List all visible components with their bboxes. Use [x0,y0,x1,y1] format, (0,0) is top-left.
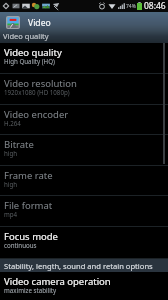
staticText: Focus mode [4,230,58,243]
button[interactable]: Video camera operation [0,272,168,300]
staticText: high [4,149,18,157]
staticText: 74% [126,3,136,10]
button[interactable]: Video quality [0,43,168,73]
button[interactable]: Focus mode [0,227,168,258]
staticText: File format [4,199,53,212]
staticText: maximize stability [4,286,57,294]
button[interactable]: Bitrate [0,135,168,165]
staticText: High Quality (HQ) [4,57,55,65]
staticText: mp4 [4,210,18,218]
staticText: continuous [4,241,37,249]
staticText: 1920x1080 (HD 1080p) [4,88,70,96]
staticText: Video encoder [4,108,69,121]
staticText: Video quality [4,46,62,59]
staticText: Video quality [3,31,49,41]
staticText: Video resolution [4,77,77,90]
staticText: Video camera operation [4,275,111,288]
button[interactable]: Video [6,14,51,31]
button[interactable]: Video resolution [0,74,168,104]
staticText: Frame rate [4,169,53,182]
staticText: H.264 [4,119,21,127]
staticText: Bitrate [4,138,34,151]
staticText: Video [28,17,51,29]
staticText: high [4,180,18,188]
staticText: 08:46 [144,0,166,12]
staticText: Stability, length, sound and retain opti… [4,261,153,271]
button[interactable]: File format [0,196,168,226]
button[interactable]: Video encoder [0,105,168,134]
button[interactable]: Frame rate [0,166,168,195]
